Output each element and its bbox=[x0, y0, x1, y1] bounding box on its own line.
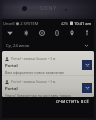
staticText: Uncell ● 2 SYSTEM bbox=[3, 21, 39, 26]
button[interactable]: Do not disturb bbox=[34, 27, 49, 39]
button[interactable]: Flashlight bbox=[79, 27, 94, 39]
staticText: 10:41 am bbox=[74, 21, 92, 26]
button[interactable]: Location bbox=[64, 27, 79, 39]
button[interactable]: ОЧИСТИТЬ ВСЁ bbox=[54, 98, 91, 105]
staticText: Portal • заявки-Sausse • 3 м bbox=[11, 79, 56, 84]
staticText: Вам оформлено новое заявление bbox=[5, 70, 65, 75]
button[interactable]: Portal • заявки-Sausse • 3 м bbox=[2, 51, 94, 75]
button[interactable]: Wi-Fi bbox=[2, 27, 18, 39]
button[interactable]: Portal • заявки-Sausse • 3 м bbox=[2, 76, 94, 97]
button[interactable]: Auto rotate bbox=[49, 27, 64, 39]
staticText: 42% bbox=[61, 21, 69, 26]
staticText: Portal • заявки-Sausse • 3 м bbox=[11, 56, 56, 61]
staticText: ОЧИСТИТЬ ВСЁ bbox=[56, 99, 89, 104]
staticText: Увага! Заказанная на доставку товару bbox=[5, 93, 72, 97]
staticText: SONY bbox=[40, 5, 58, 12]
staticText: Portal bbox=[5, 86, 18, 92]
button[interactable]: Expand quick settings bbox=[83, 42, 90, 49]
staticText: Ср, 24 июля bbox=[6, 43, 30, 48]
button[interactable]: Bluetooth bbox=[18, 27, 34, 39]
staticText: Portal bbox=[5, 63, 18, 69]
